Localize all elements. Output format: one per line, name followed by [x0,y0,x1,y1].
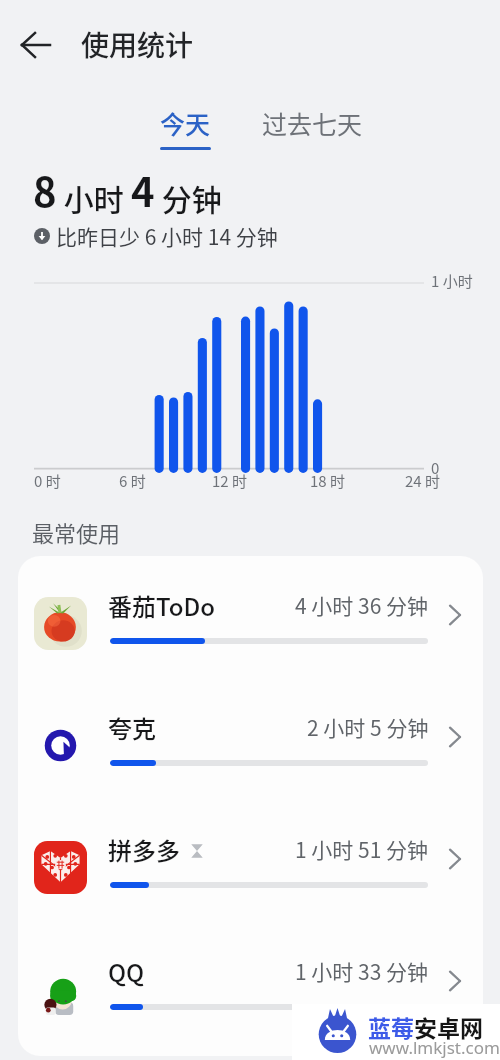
staticText: 番茄ToDo [108,588,216,623]
staticText: 最常使用 [32,516,121,548]
staticText: www.lmkjst.com [369,1036,500,1059]
staticText: 1 小时 51 分钟 [295,834,429,864]
button[interactable]: 番茄ToDo [18,556,483,678]
staticText: 18 时 [310,470,346,492]
staticText: 分钟 [155,176,222,219]
staticText: 12 时 [212,470,248,492]
staticText: 2 小时 5 分钟 [307,712,429,742]
button[interactable]: 拼多多 [18,800,483,922]
staticText: 1 小时 33 分钟 [295,956,429,986]
other: Open QQ details [436,962,474,1000]
staticText: 8 [33,161,57,219]
staticText: 蓝莓 [368,1010,414,1043]
button[interactable]: 过去七天 [262,105,363,141]
staticText: 拼多多 [108,832,180,867]
other: Open 拼多多 details [436,840,474,878]
staticText: 今天 [160,105,211,141]
staticText: 比昨日少 6 小时 14 分钟 [56,221,278,251]
button[interactable]: 夸克 [18,678,483,800]
other: Open 番茄ToDo details [436,596,474,634]
staticText: 0 [431,457,440,479]
staticText: 小时 [57,176,131,219]
staticText: 4 小时 36 分钟 [295,590,429,620]
staticText: 安卓网 [414,1010,483,1043]
staticText: 夸克 [108,710,156,745]
staticText: 24 时 [405,470,441,492]
other: Open 夸克 details [436,718,474,756]
button[interactable]: Back [14,23,58,67]
staticText: 4 [131,161,155,219]
button[interactable]: QQ [18,922,483,1044]
staticText: 6 时 [119,470,146,492]
button[interactable]: 今天 [160,105,211,150]
staticText: QQ [108,954,145,989]
staticText: 0 时 [34,470,61,492]
staticText: 使用统计 [81,24,194,65]
staticText: 1 小时 [431,270,473,292]
